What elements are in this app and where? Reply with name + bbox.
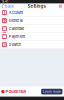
button[interactable]: Search bbox=[0, 41, 64, 49]
button[interactable]: Profile bbox=[59, 4, 64, 9]
staticText: Learn more bbox=[43, 90, 61, 94]
staticText: Back bbox=[4, 4, 13, 9]
staticText: General bbox=[9, 18, 23, 23]
staticText: Settings bbox=[28, 4, 46, 9]
button[interactable]: General bbox=[0, 17, 64, 25]
button[interactable]: Account bbox=[0, 9, 64, 17]
staticText: Calendar bbox=[9, 26, 25, 31]
staticText: Account bbox=[9, 10, 23, 15]
button[interactable]: Back bbox=[0, 4, 14, 9]
staticText: Payment bbox=[9, 34, 25, 39]
button[interactable]: Learn more bbox=[41, 89, 62, 94]
button[interactable]: Payment bbox=[0, 33, 64, 41]
staticText: Search bbox=[9, 42, 21, 47]
button[interactable]: Calendar bbox=[0, 25, 64, 33]
staticText: 9:41 bbox=[2, 0, 8, 3]
staticText: POLESTAR bbox=[5, 89, 26, 94]
